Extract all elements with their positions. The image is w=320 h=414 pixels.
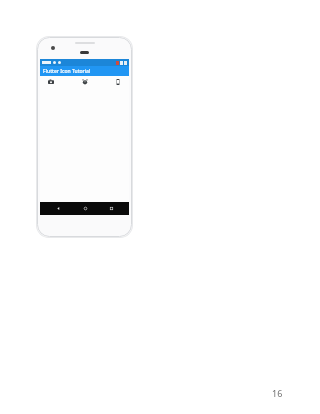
button[interactable]: Back <box>50 202 66 215</box>
button[interactable]: Home <box>77 202 93 215</box>
staticText: 16 <box>272 387 283 399</box>
button[interactable]: Phone <box>112 76 124 88</box>
staticText: Flutter Icon Tutorial <box>43 68 91 75</box>
button[interactable]: Alarm <box>79 76 91 88</box>
button[interactable]: Photo camera <box>45 76 57 88</box>
button[interactable]: Recents <box>103 202 119 215</box>
button[interactable]: Flutter Icon Tutorial <box>40 66 129 76</box>
